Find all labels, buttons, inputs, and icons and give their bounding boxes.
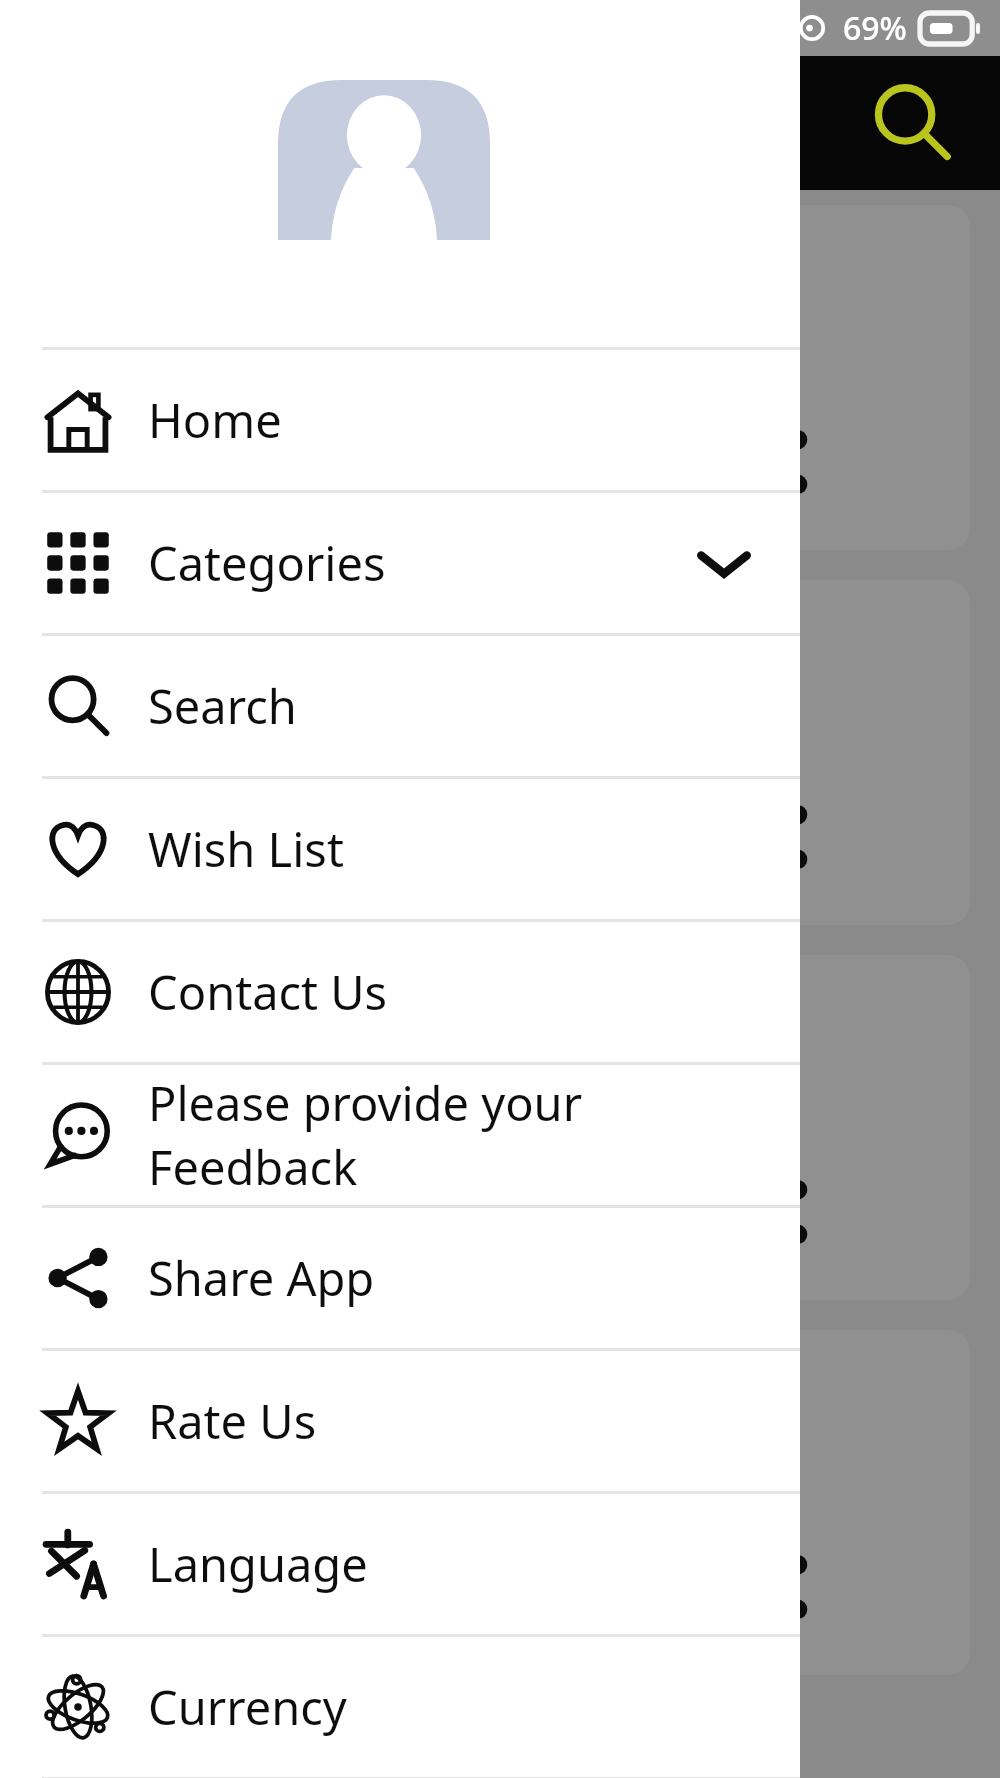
button[interactable]: Rate Us [0, 1351, 800, 1491]
staticText: Search [148, 674, 297, 738]
staticText: Currency [148, 1675, 347, 1739]
button[interactable]: Search [0, 636, 800, 776]
button[interactable]: Contact Us [0, 922, 800, 1062]
staticText: Wish List [148, 817, 344, 881]
button[interactable]: Home [0, 350, 800, 490]
button[interactable]: Share [740, 1176, 812, 1248]
staticText: Share App [148, 1246, 375, 1310]
staticText: Rate Us [148, 1389, 317, 1453]
button[interactable]: Please provide your Feedback [0, 1065, 800, 1205]
button[interactable]: Share [0, 1330, 970, 1675]
button[interactable]: Categories [0, 493, 800, 633]
button[interactable]: Share [740, 801, 812, 873]
button[interactable]: Share App [0, 1208, 800, 1348]
staticText: Categories [148, 531, 386, 595]
button[interactable]: Share [0, 580, 970, 925]
button[interactable]: Currency [0, 1637, 800, 1777]
button[interactable]: Wish List [0, 779, 800, 919]
button[interactable]: Share [740, 1551, 812, 1623]
staticText: Home [148, 388, 282, 452]
other: Expand Categories [686, 525, 762, 601]
staticText: 69% [843, 6, 907, 50]
staticText: Language [148, 1532, 368, 1596]
button[interactable]: Share [0, 205, 970, 550]
staticText: Please provide your Feedback [148, 1071, 800, 1199]
button[interactable]: Language [0, 1494, 800, 1634]
staticText: Contact Us [148, 960, 388, 1024]
button[interactable]: Share [0, 955, 970, 1300]
button[interactable]: Share [740, 426, 812, 498]
button[interactable]: Search [869, 80, 955, 166]
